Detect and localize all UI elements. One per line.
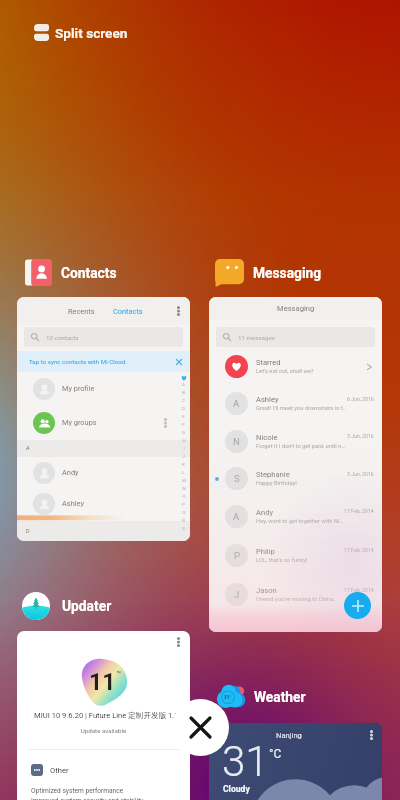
staticText: Stephanie — [256, 470, 290, 479]
button[interactable]: N — [209, 422, 382, 460]
staticText: Starred — [256, 358, 281, 367]
staticText: D — [26, 528, 30, 535]
staticText: S — [182, 526, 185, 534]
staticText: Andy — [256, 508, 274, 517]
staticText: Andy — [62, 468, 79, 477]
staticText: Nanjing — [276, 731, 302, 740]
button[interactable]: Close all — [172, 699, 229, 756]
staticText: Nicole — [256, 433, 278, 442]
staticText: D — [182, 406, 185, 414]
button[interactable]: S — [209, 460, 382, 497]
staticText: Split screen — [55, 25, 128, 41]
staticText: P — [234, 550, 240, 561]
staticText: Ashley — [256, 395, 279, 404]
button[interactable]: J — [209, 575, 382, 614]
button[interactable]: New message — [344, 592, 371, 619]
staticText: 12 contacts — [46, 334, 79, 341]
staticText: P — [182, 502, 185, 510]
staticText: Messaging — [277, 304, 315, 313]
button[interactable]: My profile — [17, 372, 190, 405]
staticText: Contacts — [113, 307, 143, 316]
staticText: A — [26, 445, 30, 452]
button[interactable]: Nanjing — [209, 723, 382, 800]
button[interactable]: Split screen — [34, 24, 128, 41]
staticText: A — [182, 382, 185, 390]
staticText: Forget it I don't to get paid, until ne.… — [256, 443, 347, 450]
staticText: Happy Birthday! — [256, 480, 297, 487]
button[interactable]: Starred — [209, 348, 382, 385]
staticText: 11 — [89, 669, 116, 696]
button[interactable]: Messaging — [209, 297, 382, 632]
staticText: A — [233, 511, 240, 522]
staticText: M — [182, 478, 186, 486]
button[interactable]: Recents — [17, 297, 190, 541]
staticText: I — [183, 446, 185, 454]
staticText: Update available — [17, 727, 190, 734]
button[interactable]: P — [209, 535, 382, 575]
staticText: 31 — [222, 737, 269, 786]
staticText: Hey, want to get together with Nic.. — [256, 518, 344, 525]
staticText: Let's eat out, shall we? — [256, 368, 314, 375]
staticText: 6 Jun, 2016 — [347, 396, 374, 402]
staticText: G — [182, 430, 185, 438]
button[interactable]: 31° — [216, 683, 306, 710]
staticText: LOL, that's so funny! — [256, 557, 308, 564]
staticText: E — [182, 414, 185, 422]
staticText: 31° — [224, 695, 232, 700]
button[interactable]: Contacts — [25, 259, 117, 286]
staticText: 11 messages — [238, 334, 275, 341]
staticText: Recents — [68, 307, 95, 316]
staticText: I heard you're moving to China. — [256, 596, 335, 603]
staticText: Jason — [256, 586, 277, 595]
button[interactable]: Andy — [17, 457, 190, 488]
staticText: C — [182, 398, 185, 406]
button[interactable]: 12 contacts — [24, 327, 183, 347]
staticText: Ashley — [62, 499, 84, 508]
staticText: N — [182, 486, 186, 494]
staticText: Updater — [62, 598, 112, 614]
staticText: A — [233, 398, 240, 409]
staticText: B — [182, 390, 185, 398]
staticText: 17 Feb, 2014 — [344, 508, 374, 514]
staticText: K — [182, 462, 185, 470]
staticText: Messaging — [253, 265, 322, 281]
staticText: R — [182, 518, 185, 526]
staticText: O — [182, 494, 186, 502]
staticText: Great! I'll meet you downstairs in t.. — [256, 405, 346, 412]
button[interactable]: Updater — [22, 592, 112, 620]
staticText: S — [234, 473, 240, 484]
button[interactable]: A — [209, 385, 382, 422]
button[interactable]: A — [209, 497, 382, 535]
staticText: °C — [269, 747, 282, 761]
staticText: 3 Jun, 2016 — [347, 471, 374, 477]
staticText: 3 Jun, 2016 — [347, 433, 374, 439]
button[interactable]: Tap to sync contacts with Mi Cloud. — [17, 351, 190, 372]
staticText: Cloudy — [223, 784, 250, 794]
staticText: Optimized system performance — [31, 787, 124, 795]
staticText: ™ — [116, 670, 122, 679]
staticText: F — [182, 422, 185, 430]
button[interactable]: 11 messages — [216, 327, 375, 347]
staticText: My profile — [62, 384, 95, 393]
staticText: J — [182, 454, 185, 462]
button[interactable]: 11 — [17, 631, 190, 800]
staticText: Philip — [256, 547, 275, 556]
staticText: MIUI 10 9.6.20 | Future Line 定制开发版 1.30 — [27, 711, 190, 721]
staticText: 17 Feb, 2014 — [344, 587, 374, 593]
staticText: Other — [50, 766, 69, 775]
button[interactable]: Messaging — [215, 259, 322, 287]
staticText: Improved system security and stability — [31, 797, 144, 800]
staticText: Q — [182, 510, 186, 518]
button[interactable]: My groups — [17, 405, 190, 440]
staticText: Contacts — [61, 265, 117, 281]
staticText: Weather — [254, 689, 306, 705]
button[interactable]: Ashley — [17, 488, 190, 519]
staticText: J — [234, 589, 240, 600]
staticText: N — [233, 436, 240, 447]
staticText: L — [182, 470, 185, 478]
staticText: H — [182, 438, 186, 446]
staticText: Tap to sync contacts with Mi Cloud. — [29, 358, 127, 365]
staticText: 17 Feb, 2014 — [344, 547, 374, 553]
staticText: My groups — [62, 418, 97, 427]
